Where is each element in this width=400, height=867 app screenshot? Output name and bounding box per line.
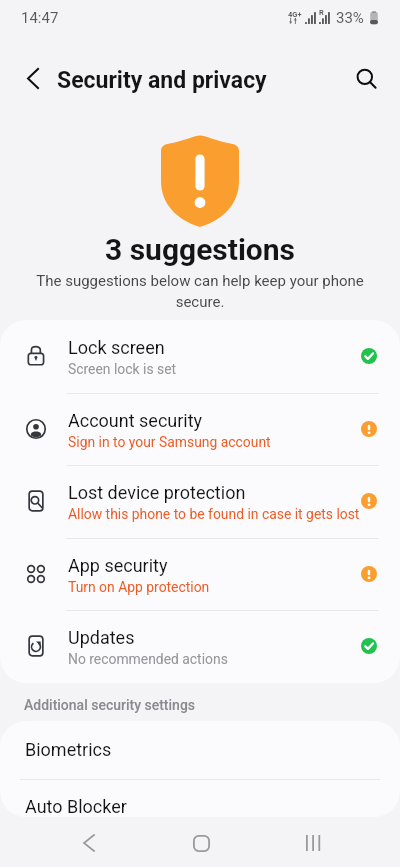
button[interactable]: Search xyxy=(342,56,387,101)
staticText: Allow this phone to be found in case it … xyxy=(68,506,360,522)
button[interactable]: Auto Blocker xyxy=(0,780,400,817)
staticText: 33% xyxy=(336,9,364,27)
staticText: 14:47 xyxy=(21,9,59,27)
staticText: Auto Blocker xyxy=(25,796,127,817)
staticText: 3 suggestions xyxy=(105,232,296,267)
staticText: 4G+ xyxy=(288,10,302,19)
button[interactable]: Biometrics xyxy=(0,721,400,779)
staticText: Screen lock is set xyxy=(68,361,177,377)
staticText: Additional security settings xyxy=(24,697,196,713)
button[interactable]: App security xyxy=(0,538,400,611)
button[interactable]: Lock screen xyxy=(0,320,400,393)
staticText: App security xyxy=(68,555,168,576)
staticText: Lock screen xyxy=(68,337,165,358)
staticText: R xyxy=(319,8,324,17)
button[interactable]: Navigate up xyxy=(10,61,55,106)
button[interactable]: Back xyxy=(56,819,122,867)
staticText: No recommended actions xyxy=(68,651,228,667)
staticText: Security and privacy xyxy=(57,67,267,94)
staticText: Updates xyxy=(68,627,135,648)
staticText: Sign in to your Samsung account xyxy=(68,434,271,450)
button[interactable]: Updates xyxy=(0,610,400,683)
button[interactable]: Recent apps xyxy=(280,819,346,867)
staticText: Turn on App protection xyxy=(68,579,210,595)
button[interactable]: Lost device protection xyxy=(0,465,400,538)
button[interactable]: Account security xyxy=(0,393,400,466)
staticText: Lost device protection xyxy=(68,482,246,503)
button[interactable]: Home xyxy=(168,819,234,867)
staticText: Biometrics xyxy=(25,739,112,760)
staticText: Account security xyxy=(68,410,203,431)
staticText: The suggestions below can help keep your… xyxy=(34,272,366,310)
